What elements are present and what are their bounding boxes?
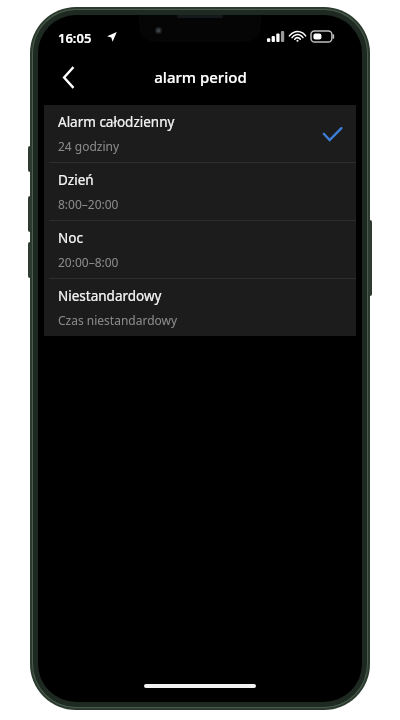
staticText: 16:05 bbox=[58, 29, 92, 47]
other: Volume down bbox=[28, 242, 32, 278]
button[interactable]: Niestandardowy bbox=[44, 279, 356, 336]
staticText: Alarm całodzienny bbox=[58, 113, 175, 131]
staticText: Noc bbox=[58, 229, 83, 247]
staticText: Czas niestandardowy bbox=[58, 312, 178, 328]
other: Silent switch bbox=[28, 146, 32, 172]
button[interactable]: Back bbox=[46, 55, 90, 99]
other: Volume up bbox=[28, 196, 32, 232]
button[interactable]: Dzień bbox=[44, 163, 356, 220]
staticText: 20:00–8:00 bbox=[58, 254, 119, 270]
staticText: Niestandardowy bbox=[58, 287, 162, 305]
other: Power bbox=[368, 220, 372, 296]
staticText: 24 godziny bbox=[58, 138, 120, 154]
staticText: 8:00–20:00 bbox=[58, 196, 119, 212]
button[interactable]: Alarm całodzienny bbox=[44, 105, 356, 162]
staticText: Dzień bbox=[58, 171, 94, 189]
staticText: alarm period bbox=[154, 67, 247, 87]
button[interactable]: Noc bbox=[44, 221, 356, 278]
